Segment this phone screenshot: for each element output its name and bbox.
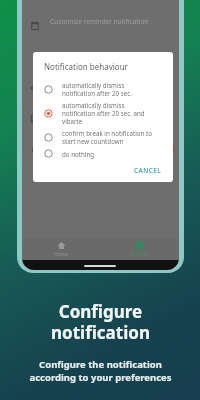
staticText: Notification behaviour	[44, 61, 128, 72]
staticText: do nothing	[62, 150, 95, 158]
staticText: automatically dismiss notification after…	[62, 81, 132, 97]
button[interactable]: Share App	[22, 75, 179, 100]
staticText: Send crash reports	[50, 141, 108, 150]
button[interactable]: CANCEL	[128, 164, 164, 182]
button[interactable]: automatically dismiss notification after…	[44, 100, 164, 126]
staticText: CANCEL	[134, 166, 162, 175]
staticText: Send crash reports to help improve the	[50, 151, 145, 158]
button[interactable]: do nothing	[44, 148, 164, 159]
button[interactable]: Home	[22, 238, 100, 260]
button[interactable]: confirm break in notification to start n…	[44, 128, 164, 146]
staticText: Home	[54, 251, 69, 258]
button[interactable]: automatically dismiss notification after…	[44, 80, 164, 98]
staticText: Share App	[50, 79, 82, 88]
staticText: Share this app with your friends	[50, 89, 128, 96]
staticText: Rate App	[50, 110, 78, 119]
staticText: confirm break in notification to start n…	[62, 129, 152, 145]
staticText: Customize reminder notification	[50, 17, 149, 26]
staticText: Configure the notification according to …	[29, 358, 172, 384]
button[interactable]: Settings	[100, 238, 179, 260]
staticText: Configure notification	[51, 300, 150, 344]
button[interactable]: Send crash reports	[22, 137, 179, 162]
staticText: Rate this app in the PlayStore	[50, 120, 122, 127]
staticText: Settings	[130, 251, 150, 258]
button[interactable]: Customize reminder notification	[22, 13, 179, 31]
button[interactable]: Rate App	[22, 106, 179, 131]
staticText: automatically dismiss notification after…	[62, 101, 145, 125]
